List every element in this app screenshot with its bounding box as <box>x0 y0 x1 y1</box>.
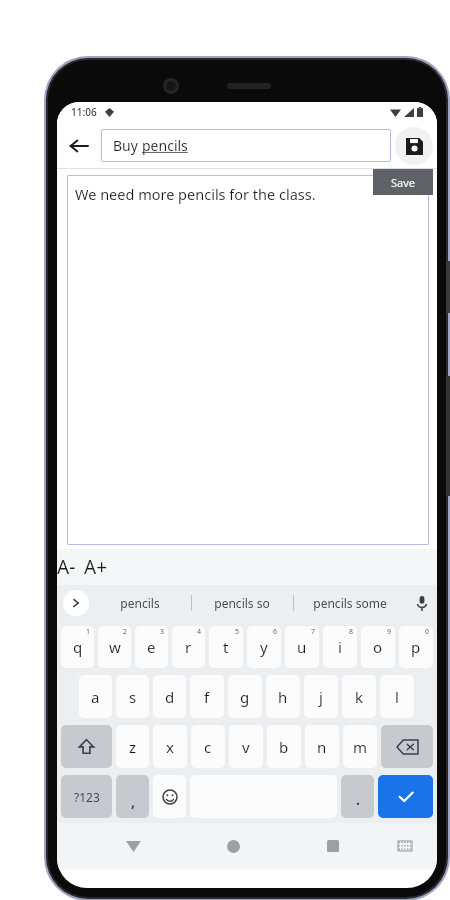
staticText: 2 <box>123 627 128 637</box>
staticText: Save <box>391 175 416 190</box>
button[interactable]: Enter <box>378 775 433 818</box>
button[interactable]: f <box>190 675 224 718</box>
button[interactable]: r <box>172 626 205 668</box>
staticText: b <box>279 737 289 757</box>
button[interactable]: i <box>323 626 357 668</box>
button[interactable]: x <box>153 725 187 768</box>
button[interactable]: v <box>229 725 263 768</box>
button[interactable]: z <box>116 725 149 768</box>
staticText: p <box>411 637 421 657</box>
button[interactable]: Shift <box>61 725 112 768</box>
staticText: 7 <box>311 627 316 637</box>
button[interactable]: m <box>343 725 377 768</box>
staticText: Buy <box>113 136 142 155</box>
button[interactable]: Buy <box>101 129 391 162</box>
button[interactable]: o <box>361 626 395 668</box>
staticText: f <box>204 687 210 707</box>
staticText: 4 <box>197 627 202 637</box>
button[interactable]: Emoji <box>153 775 186 818</box>
staticText: pencils so <box>214 595 270 611</box>
button[interactable]: s <box>116 675 149 718</box>
button[interactable]: pencils so <box>191 585 293 621</box>
staticText: 3 <box>160 627 165 637</box>
staticText: u <box>297 637 307 657</box>
button[interactable]: Recent apps <box>313 826 353 866</box>
staticText: A- <box>57 554 76 580</box>
button[interactable]: g <box>228 675 262 718</box>
button[interactable]: l <box>380 675 414 718</box>
staticText: k <box>355 687 364 707</box>
staticText: A+ <box>84 554 108 580</box>
button[interactable]: j <box>304 675 338 718</box>
staticText: d <box>165 687 175 707</box>
staticText: t <box>223 637 229 657</box>
button[interactable]: Home <box>213 826 253 866</box>
staticText: v <box>242 737 250 757</box>
button[interactable]: Period <box>341 775 374 818</box>
button[interactable]: b <box>267 725 301 768</box>
staticText: , <box>131 792 135 811</box>
button[interactable]: Back <box>57 124 101 168</box>
staticText: h <box>278 687 288 707</box>
staticText: g <box>240 687 250 707</box>
button[interactable]: More suggestions <box>63 590 89 616</box>
button[interactable]: h <box>266 675 300 718</box>
staticText: m <box>353 737 368 757</box>
button[interactable]: A- <box>57 554 76 580</box>
button[interactable]: t <box>209 626 243 668</box>
staticText: l <box>395 687 399 707</box>
staticText: c <box>204 737 212 757</box>
staticText: o <box>373 637 383 657</box>
staticText: e <box>147 637 156 657</box>
staticText: 1 <box>86 627 91 637</box>
staticText: pencils <box>120 595 160 611</box>
button[interactable]: w <box>98 626 131 668</box>
staticText: n <box>317 737 327 757</box>
button[interactable]: a <box>79 675 112 718</box>
button[interactable]: y <box>247 626 281 668</box>
staticText: 6 <box>273 627 278 637</box>
button[interactable]: We need more pencils for the class. <box>67 175 429 545</box>
staticText: y <box>260 637 268 657</box>
staticText: s <box>129 687 137 707</box>
button[interactable]: Switch keyboard <box>388 829 422 863</box>
staticText: . <box>356 790 360 809</box>
button[interactable]: q <box>61 626 94 668</box>
staticText: pencils some <box>313 595 387 611</box>
button[interactable]: pencils some <box>293 585 407 621</box>
staticText: 11:06 <box>71 105 97 119</box>
button[interactable]: Voice input <box>407 585 437 621</box>
staticText: 9 <box>387 627 392 637</box>
button[interactable]: pencils <box>89 585 191 621</box>
staticText: a <box>91 687 100 707</box>
button[interactable]: n <box>305 725 339 768</box>
button[interactable]: p <box>399 626 433 668</box>
staticText: 0 <box>425 627 430 637</box>
staticText: i <box>338 637 342 657</box>
button[interactable]: Back <box>113 826 153 866</box>
staticText: q <box>73 637 83 657</box>
button[interactable]: Symbols <box>61 775 112 818</box>
button[interactable]: k <box>342 675 376 718</box>
staticText: 8 <box>349 627 354 637</box>
button[interactable]: u <box>285 626 319 668</box>
staticText: w <box>109 637 121 657</box>
staticText: We need more pencils for the class. <box>75 184 316 204</box>
button[interactable]: Comma <box>116 775 149 818</box>
staticText: pencils <box>142 136 188 155</box>
staticText: 5 <box>235 627 240 637</box>
button[interactable]: A+ <box>84 554 108 580</box>
staticText: x <box>166 737 174 757</box>
staticText: z <box>129 737 137 757</box>
button[interactable]: Save <box>391 123 437 169</box>
staticText: r <box>185 637 192 657</box>
staticText: j <box>319 687 323 707</box>
button[interactable]: e <box>135 626 168 668</box>
button[interactable]: d <box>153 675 186 718</box>
staticText: ?123 <box>74 789 100 805</box>
button[interactable]: Backspace <box>381 725 433 768</box>
button[interactable]: c <box>191 725 225 768</box>
